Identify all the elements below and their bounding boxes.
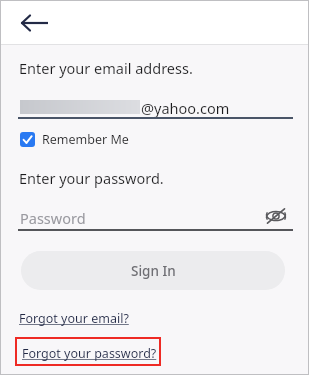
button[interactable]: Remember Me — [20, 128, 129, 150]
staticText: Forgot your email? — [19, 310, 129, 327]
button[interactable]: Sign In — [21, 251, 285, 290]
staticText: @yahoo.com — [141, 98, 230, 118]
staticText: Remember Me — [42, 131, 129, 148]
staticText: Sign In — [131, 262, 176, 280]
button[interactable]: Forgot your email? — [19, 310, 129, 327]
staticText: Enter your email address. — [19, 58, 193, 78]
button[interactable]: Show password — [262, 204, 290, 228]
staticText: Enter your password. — [19, 168, 164, 188]
staticText: Password — [20, 208, 86, 228]
button[interactable]: Back — [12, 8, 58, 38]
button[interactable]: Forgot your password? — [22, 345, 157, 362]
staticText: Forgot your password? — [22, 345, 157, 362]
